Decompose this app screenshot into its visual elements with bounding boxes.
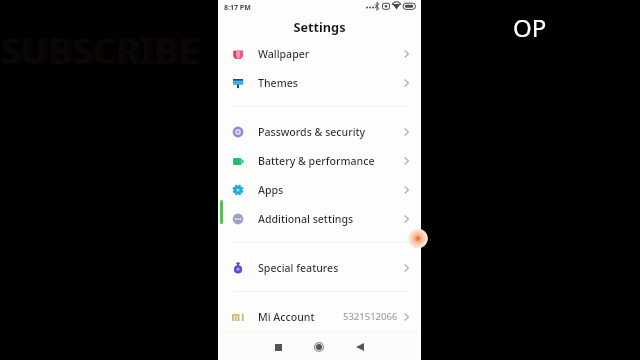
staticText: SUBSCRIBE	[0, 25, 199, 75]
staticText: Apps	[258, 183, 284, 197]
staticText: Special features	[258, 261, 339, 275]
staticText: Mi Account	[258, 310, 315, 324]
staticText: Wallpaper	[258, 47, 310, 61]
staticText: Themes	[258, 76, 298, 90]
staticText: SUBSCRIBE	[4, 25, 203, 75]
button[interactable]: Back	[349, 336, 371, 358]
button[interactable]: Apps	[218, 175, 421, 204]
staticText: OP	[513, 11, 547, 44]
button[interactable]: Special features	[218, 253, 421, 282]
button[interactable]: Wallpaper	[218, 39, 421, 68]
button[interactable]: Battery & performance	[218, 146, 421, 175]
button[interactable]: Recent apps	[267, 336, 289, 358]
button[interactable]: Passwords & security	[218, 117, 421, 146]
button[interactable]: Home	[308, 336, 330, 358]
staticText: Additional settings	[258, 212, 354, 226]
staticText: 5321512066	[343, 310, 398, 323]
button[interactable]: Themes	[218, 68, 421, 97]
button[interactable]: Additional settings	[218, 204, 421, 233]
staticText: Battery & performance	[258, 154, 375, 168]
staticText: Passwords & security	[258, 125, 366, 139]
staticText: 8:17 PM	[224, 3, 251, 13]
button[interactable]: Mi Account	[218, 302, 421, 331]
staticText: Settings	[218, 18, 421, 35]
